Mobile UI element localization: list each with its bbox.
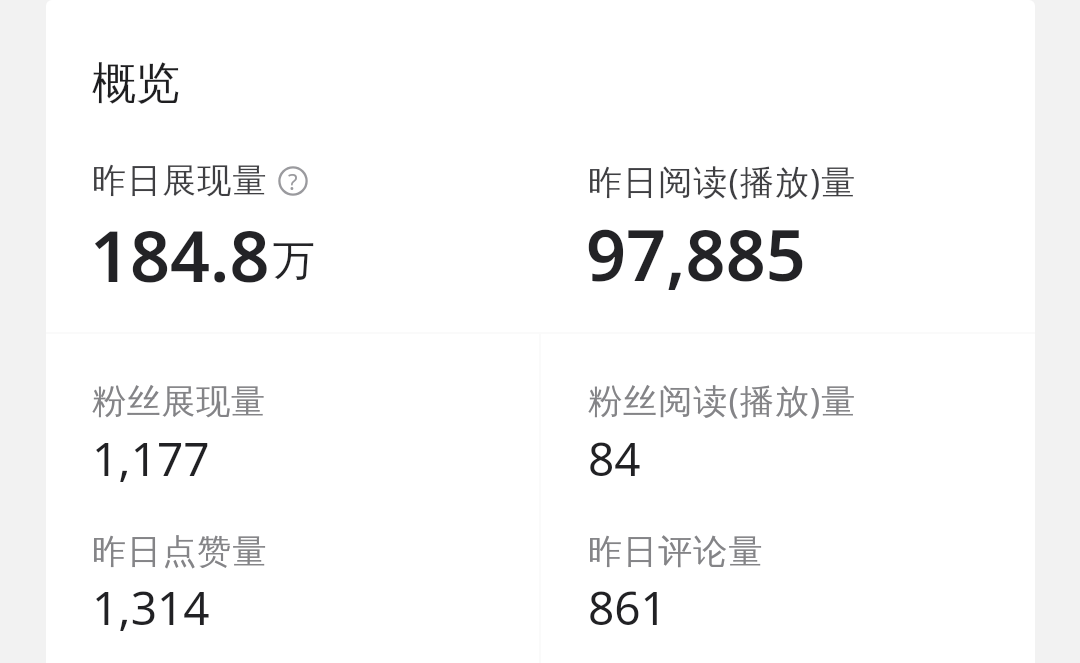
staticText: 1,177 xyxy=(92,427,210,490)
staticText: 97,885 xyxy=(586,206,806,301)
staticText: 昨日展现量 xyxy=(92,159,268,202)
staticText: ? xyxy=(288,166,298,196)
staticText: 昨日阅读(播放)量 xyxy=(588,158,857,204)
button[interactable]: 昨日点赞量 xyxy=(46,484,539,634)
staticText: 1,314 xyxy=(92,576,210,639)
staticText: 概览 xyxy=(92,56,180,111)
button[interactable]: 粉丝展现量 xyxy=(46,334,539,484)
button[interactable]: 昨日阅读(播放)量 xyxy=(539,130,1035,332)
staticText: 昨日点赞量 xyxy=(92,530,268,573)
staticText: 万 xyxy=(273,235,315,288)
staticText: 184.8 xyxy=(90,207,270,302)
staticText: 84 xyxy=(588,427,641,490)
button[interactable]: 昨日展现量说明 xyxy=(278,166,308,196)
staticText: 粉丝阅读(播放)量 xyxy=(588,377,857,423)
staticText: 昨日评论量 xyxy=(588,530,764,573)
button[interactable]: 粉丝阅读(播放)量 xyxy=(539,334,1035,484)
button[interactable]: 昨日评论量 xyxy=(539,484,1035,634)
staticText: 粉丝展现量 xyxy=(92,380,266,423)
staticText: 861 xyxy=(588,576,667,639)
button[interactable]: 昨日展现量 xyxy=(46,130,539,332)
